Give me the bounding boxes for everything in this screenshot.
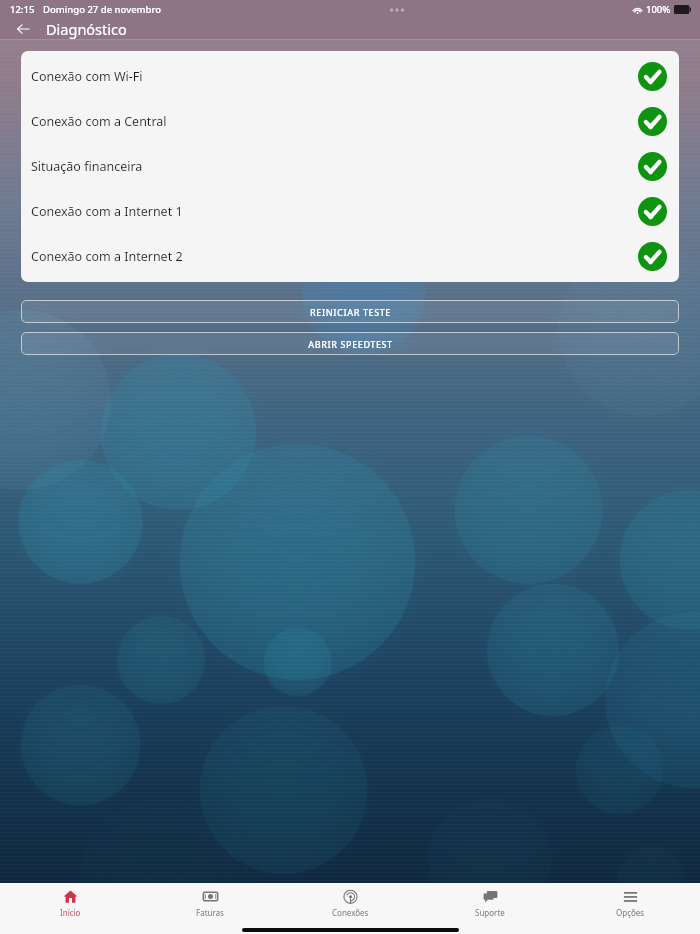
staticText: Suporte xyxy=(475,907,505,918)
staticText: 12:15 xyxy=(10,3,35,16)
staticText: Conexão com Wi-Fi xyxy=(31,68,143,85)
button[interactable]: ABRIR SPEEDTEST xyxy=(21,332,679,355)
button[interactable]: REINICIAR TESTE xyxy=(21,300,679,323)
button[interactable]: Conexão com a Central xyxy=(21,99,679,144)
staticText: Conexão com a Internet 1 xyxy=(31,203,183,220)
staticText: Conexões xyxy=(332,907,369,918)
staticText: Conexão com a Central xyxy=(31,113,167,130)
staticText: Domingo 27 de novembro xyxy=(43,3,162,16)
staticText: Início xyxy=(60,907,81,918)
staticText: 100% xyxy=(646,3,671,16)
button[interactable]: Conexões xyxy=(280,883,420,923)
staticText: REINICIAR TESTE xyxy=(310,306,391,318)
button[interactable]: Conexão com a Internet 2 xyxy=(21,234,679,279)
staticText: Situação financeira xyxy=(31,158,143,175)
button[interactable]: Início xyxy=(0,883,140,923)
staticText: ABRIR SPEEDTEST xyxy=(308,338,393,350)
button[interactable]: Situação financeira xyxy=(21,144,679,189)
button[interactable]: Voltar xyxy=(12,19,34,39)
button[interactable]: Opções xyxy=(560,883,700,923)
button[interactable]: Conexão com a Internet 1 xyxy=(21,189,679,234)
button[interactable]: Faturas xyxy=(140,883,280,923)
staticText: Conexão com a Internet 2 xyxy=(31,248,183,265)
staticText: Diagnóstico xyxy=(46,19,127,39)
staticText: Faturas xyxy=(196,907,224,918)
button[interactable]: Suporte xyxy=(420,883,560,923)
button[interactable]: Conexão com Wi-Fi xyxy=(21,54,679,99)
staticText: Opções xyxy=(616,907,645,918)
